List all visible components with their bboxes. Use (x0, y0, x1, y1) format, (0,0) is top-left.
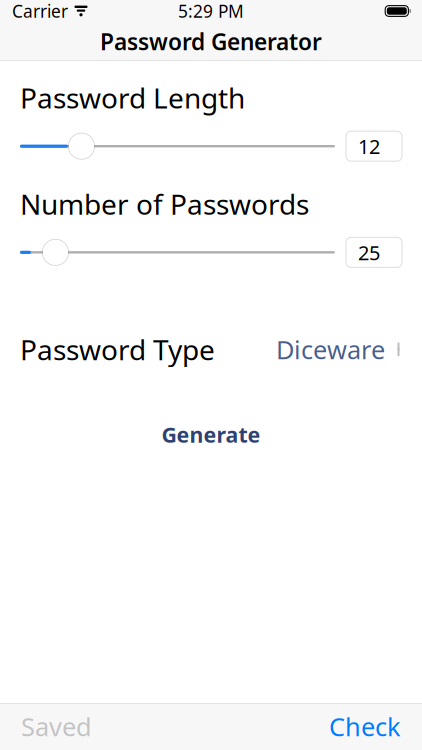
staticText: Saved (21, 710, 92, 743)
staticText: Generate (161, 420, 260, 448)
staticText: Number of Passwords (20, 185, 309, 222)
button[interactable]: Saved (11, 702, 102, 750)
staticText: Password Generator (100, 26, 322, 56)
button[interactable]: Password Type (0, 330, 422, 368)
button[interactable]: Check (319, 702, 411, 750)
button[interactable]: Generate (0, 412, 422, 456)
staticText: 25 (358, 239, 380, 266)
staticText: Password Type (20, 331, 215, 368)
staticText: Check (329, 710, 401, 743)
staticText: Carrier (12, 0, 68, 22)
staticText: 5:29 PM (178, 0, 244, 22)
staticText: Diceware (276, 332, 385, 366)
staticText: Password Length (20, 79, 245, 116)
staticText: 12 (358, 133, 380, 159)
